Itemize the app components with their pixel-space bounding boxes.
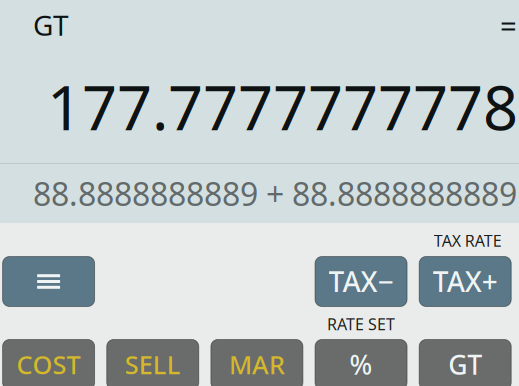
button[interactable]: TAX+ (419, 256, 511, 306)
button[interactable]: % (315, 339, 407, 386)
staticText: TAX− (329, 263, 394, 300)
staticText: = (500, 5, 517, 44)
staticText: RATE SET (327, 313, 395, 335)
staticText: % (350, 347, 373, 382)
button[interactable]: TAX− (315, 256, 407, 306)
button[interactable]: GT (419, 339, 511, 386)
staticText: 88.8888888889 + 88.8888888889 (33, 172, 517, 215)
staticText: GT (33, 6, 69, 44)
staticText: MAR (229, 348, 285, 381)
button[interactable]: MAR (211, 339, 303, 386)
staticText: GT (448, 347, 482, 382)
staticText: TAX RATE (434, 230, 502, 251)
button[interactable]: Menu (3, 256, 95, 306)
staticText: SELL (125, 348, 181, 381)
staticText: TAX+ (433, 263, 498, 300)
staticText: COST (17, 348, 81, 381)
button[interactable]: COST (3, 339, 95, 386)
staticText: 177.7777777778 (47, 66, 518, 147)
button[interactable]: SELL (107, 339, 199, 386)
